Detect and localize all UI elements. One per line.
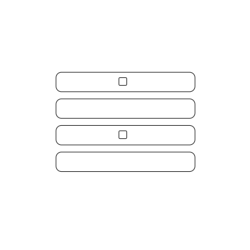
button[interactable]: Item 3 [55, 125, 194, 145]
button[interactable]: Item 4 [55, 152, 194, 172]
button[interactable]: Item 2 [55, 99, 194, 118]
button[interactable]: Item 1 [55, 72, 194, 92]
